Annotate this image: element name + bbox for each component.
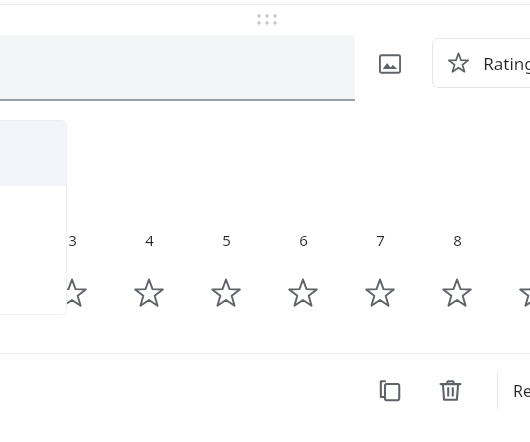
button[interactable]: Rate 7 (361, 275, 399, 313)
button[interactable]: Rate 9 (515, 275, 530, 313)
staticText: 8 (453, 230, 462, 250)
button[interactable]: Insert image (374, 48, 406, 80)
button[interactable]: Rate 8 (438, 275, 476, 313)
button[interactable]: Duplicate (372, 372, 408, 408)
button[interactable]: Rating (432, 38, 530, 88)
staticText: Rating (483, 52, 530, 75)
button[interactable]: Delete (432, 372, 468, 408)
staticText: 5 (222, 230, 231, 250)
staticText: 4 (145, 230, 154, 250)
button[interactable]: Re (513, 378, 530, 404)
button[interactable]: Rate 5 (207, 275, 245, 313)
button[interactable]: Drag handle (255, 10, 281, 30)
button[interactable] (0, 35, 355, 101)
staticText: Re (513, 380, 530, 402)
staticText: 7 (376, 230, 385, 250)
button[interactable]: Rate 4 (130, 275, 168, 313)
staticText: 6 (299, 230, 308, 250)
button[interactable]: Rate 3 (53, 275, 91, 313)
staticText: 3 (68, 230, 77, 250)
button[interactable]: Rate 6 (284, 275, 322, 313)
